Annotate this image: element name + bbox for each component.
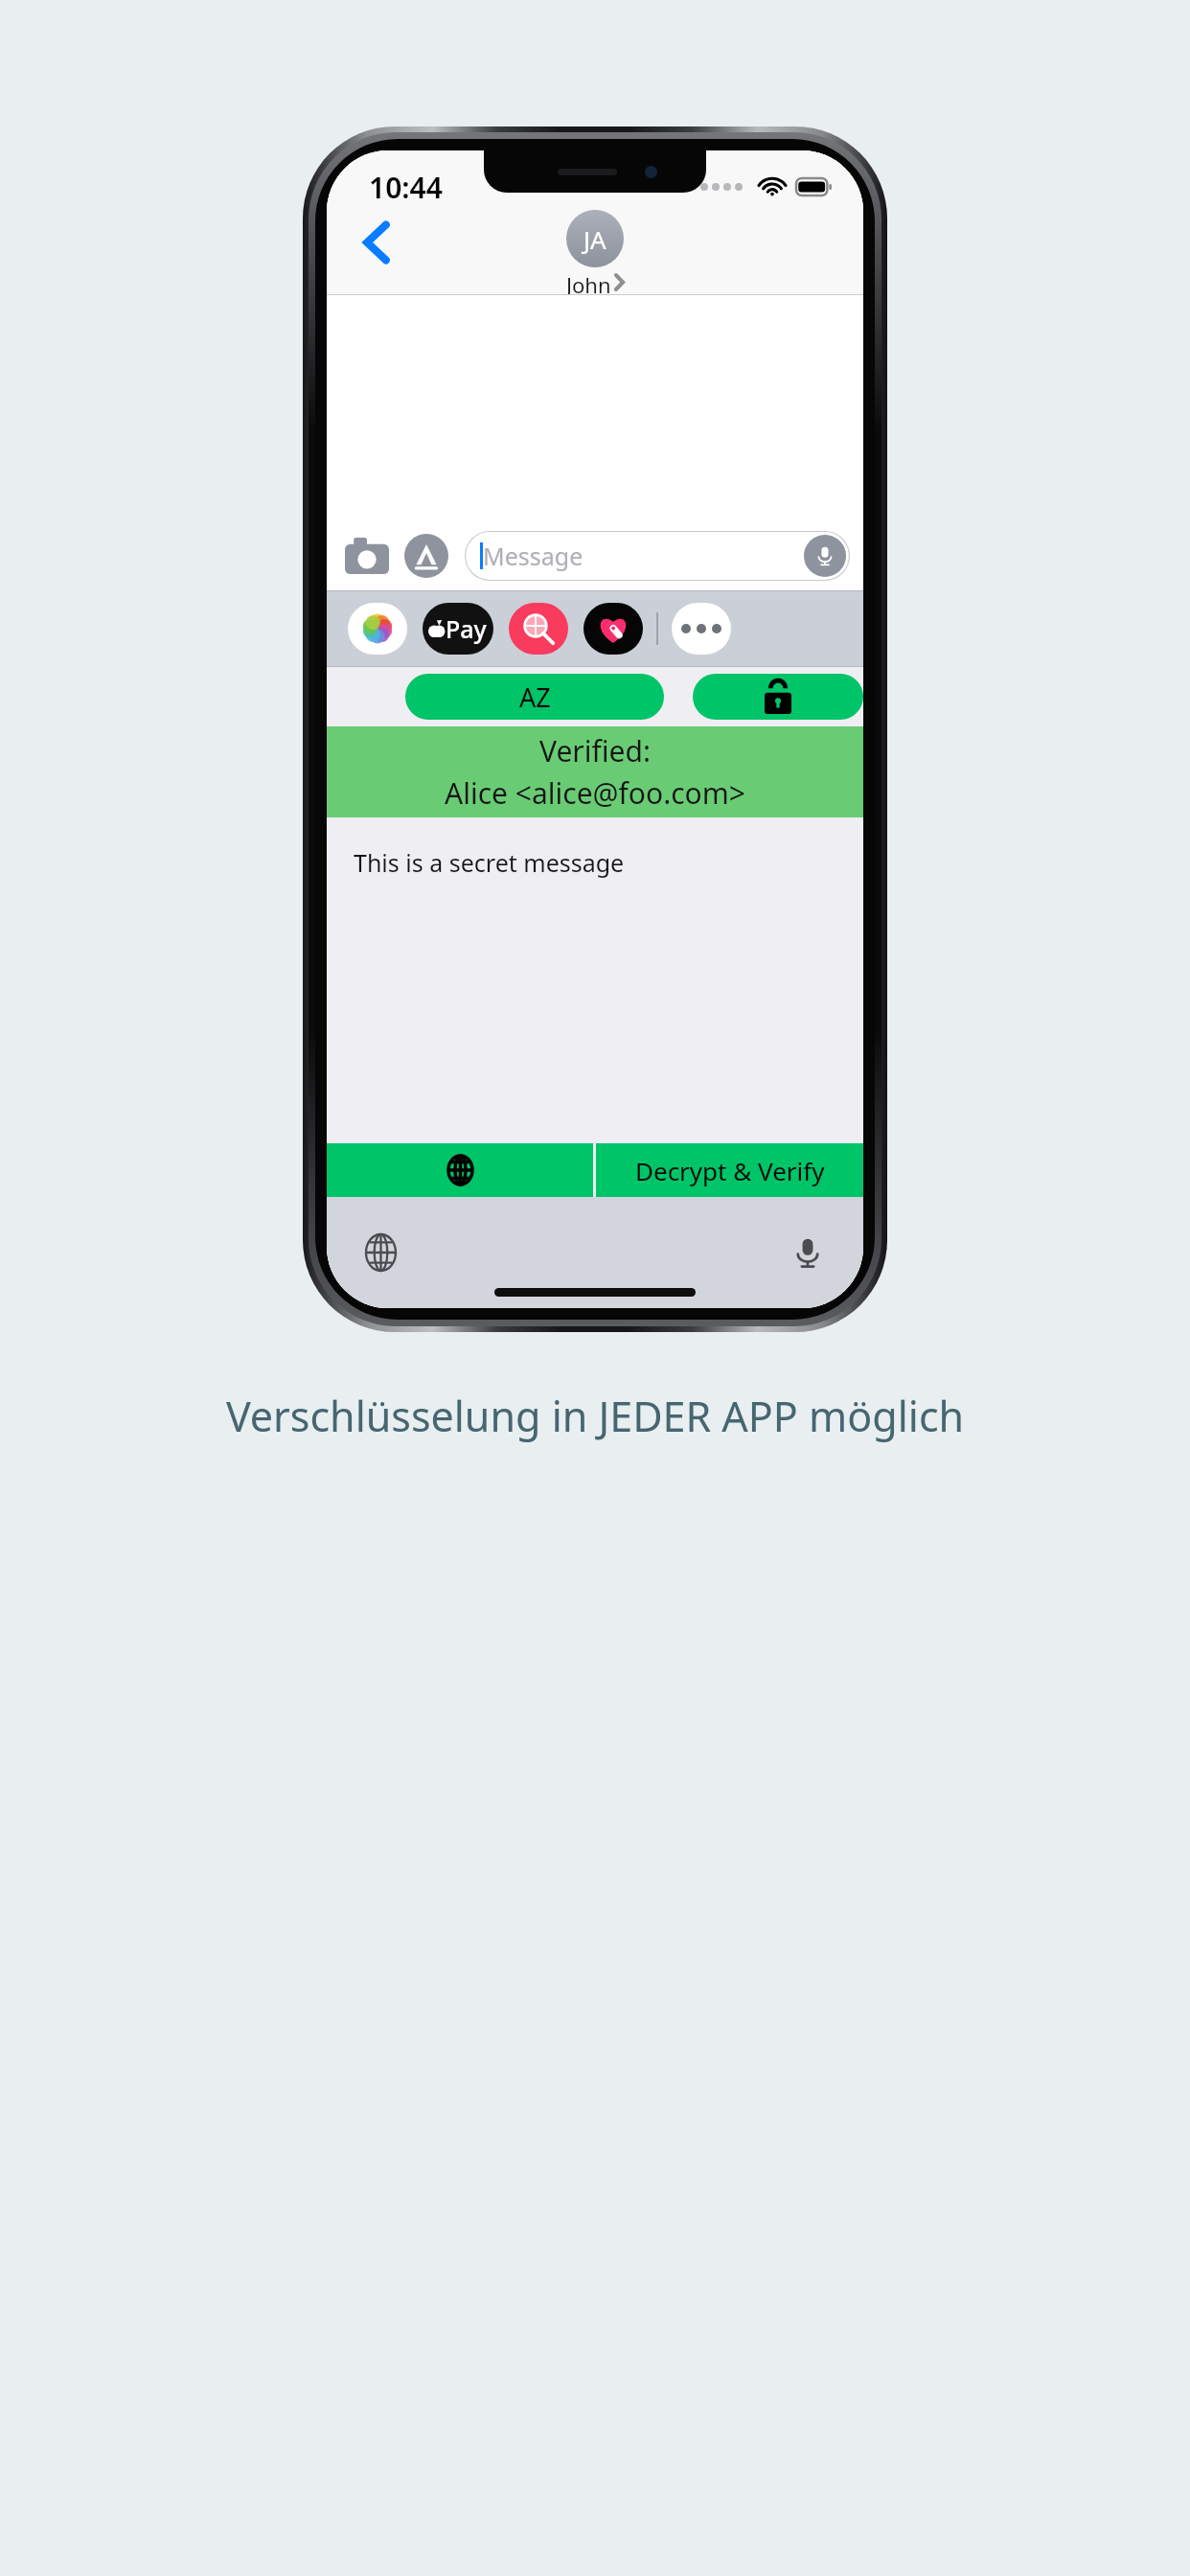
staticText: Message — [483, 540, 584, 572]
button[interactable]: Switch keyboard — [354, 1226, 407, 1279]
staticText: John — [566, 270, 611, 294]
staticText: JA — [584, 222, 606, 256]
button[interactable]: Camera — [340, 529, 394, 583]
staticText: Verified: — [539, 731, 651, 770]
button[interactable]: More apps — [672, 603, 731, 655]
button[interactable]: Language — [327, 1143, 593, 1197]
staticText: AZ — [519, 679, 551, 715]
staticText: 10:44 — [369, 168, 443, 207]
button[interactable]: Decrypt & Verify — [596, 1143, 863, 1197]
button[interactable]: App Store — [400, 529, 453, 583]
staticText: Decrypt & Verify — [635, 1154, 825, 1187]
staticText: This is a secret message — [354, 846, 625, 879]
button[interactable]: Photos — [348, 603, 407, 655]
staticText: Pay — [446, 612, 487, 645]
other: Dictate — [804, 535, 846, 577]
button[interactable]: Music — [584, 603, 643, 655]
button[interactable]: Encrypt — [693, 674, 863, 720]
button[interactable]: Back — [348, 214, 405, 271]
button[interactable]: John — [566, 270, 624, 294]
button[interactable]: AZ — [405, 674, 664, 720]
button[interactable]: Images search — [509, 603, 568, 655]
staticText: Alice <alice@foo.com> — [445, 773, 745, 813]
button[interactable]: Message — [465, 531, 850, 581]
staticText: Verschlüsselung in JEDER APP möglich — [0, 1388, 1190, 1444]
button[interactable]: Dictation — [781, 1226, 835, 1279]
button[interactable]: Apple Pay — [423, 603, 493, 655]
